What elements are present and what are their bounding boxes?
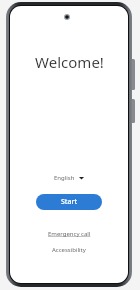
button[interactable]: Emergency call bbox=[44, 229, 95, 239]
staticText: Emergency call bbox=[48, 230, 91, 238]
button[interactable]: Accessibility bbox=[48, 245, 90, 255]
other: Power bbox=[129, 99, 135, 123]
button[interactable]: English bbox=[51, 173, 87, 183]
staticText: Welcome! bbox=[35, 52, 104, 72]
button[interactable]: Start bbox=[36, 194, 102, 210]
staticText: Start bbox=[61, 197, 78, 207]
staticText: Accessibility bbox=[52, 246, 86, 254]
staticText: English bbox=[54, 174, 75, 182]
other: Volume bbox=[129, 59, 135, 90]
